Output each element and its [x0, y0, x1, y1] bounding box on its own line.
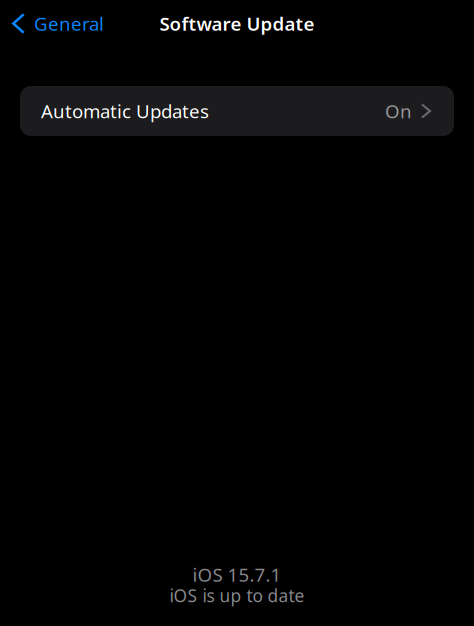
- staticText: iOS 15.7.1: [192, 562, 281, 587]
- staticText: Automatic Updates: [41, 99, 209, 123]
- staticText: iOS is up to date: [169, 584, 304, 607]
- staticText: Software Update: [159, 11, 314, 36]
- staticText: General: [34, 11, 104, 36]
- button[interactable]: Automatic Updates: [20, 86, 454, 136]
- button[interactable]: Back to General: [0, 4, 112, 43]
- staticText: On: [385, 99, 412, 123]
